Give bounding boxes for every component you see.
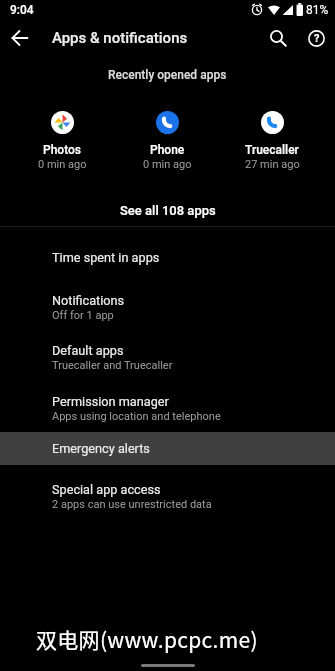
staticText: 双电网(www.pcpc.me)	[36, 624, 258, 654]
staticText: Time spent in apps	[52, 250, 160, 265]
button[interactable]: Truecaller	[222, 111, 322, 171]
button[interactable]: Phone	[117, 111, 217, 171]
staticText: 81%	[306, 3, 329, 17]
staticText: Permission manager	[52, 394, 169, 409]
staticText: Phone	[150, 143, 185, 157]
staticText: 0 min ago	[143, 158, 192, 171]
button[interactable]	[260, 20, 296, 56]
staticText: Off for 1 app	[52, 309, 114, 322]
staticText: Notifications	[52, 293, 125, 308]
staticText: 27 min ago	[245, 158, 300, 171]
button[interactable]: ?	[298, 20, 334, 56]
staticText: Photos	[43, 143, 82, 157]
button[interactable]: Special app access	[0, 465, 335, 517]
staticText: See all 108 apps	[120, 203, 216, 218]
staticText: ?	[314, 32, 320, 45]
staticText: Truecaller and Truecaller	[52, 359, 173, 372]
staticText: 0 min ago	[38, 158, 87, 171]
button[interactable]: See all 108 apps	[0, 203, 335, 218]
button[interactable]: Permission manager	[0, 385, 335, 432]
button[interactable]: Emergency alerts	[0, 432, 335, 465]
button[interactable]	[0, 20, 40, 56]
staticText: Apps using location and telephone	[52, 410, 221, 423]
button[interactable]: Photos	[12, 111, 112, 171]
staticText: 2 apps can use unrestricted data	[52, 498, 212, 511]
staticText: Default apps	[52, 343, 124, 358]
staticText: Special app access	[52, 482, 161, 497]
staticText: Recently opened apps	[108, 68, 227, 82]
staticText: 9:04	[10, 3, 34, 17]
button[interactable]: Time spent in apps	[0, 227, 335, 281]
button[interactable]: Notifications	[0, 281, 335, 333]
staticText: Apps & notifications	[52, 29, 188, 47]
staticText: Truecaller	[245, 143, 299, 157]
staticText: Emergency alerts	[52, 441, 150, 456]
button[interactable]: Default apps	[0, 333, 335, 385]
